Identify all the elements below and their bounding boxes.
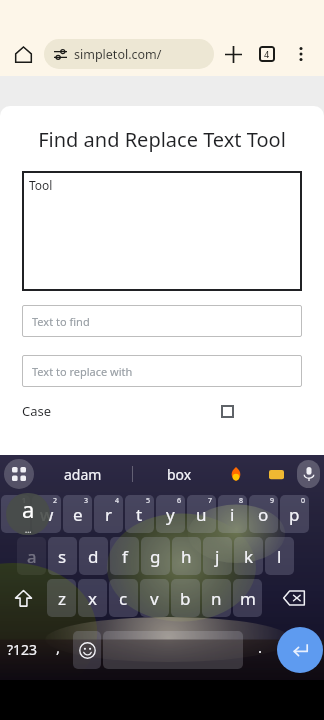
button[interactable]: New tab xyxy=(216,37,250,71)
staticText: 3 xyxy=(84,496,89,506)
button[interactable]: u xyxy=(187,495,216,533)
button[interactable]: Text to replace with xyxy=(22,355,302,387)
staticText: Find and Replace Text Tool xyxy=(22,126,302,153)
button[interactable]: simpletol.com/findandreplac xyxy=(44,39,214,69)
button[interactable]: Backspace xyxy=(264,579,323,617)
button[interactable]: Sticker xyxy=(265,463,287,485)
button[interactable]: s xyxy=(48,537,77,575)
staticText: e xyxy=(73,503,83,526)
button[interactable]: g xyxy=(141,537,170,575)
button[interactable]: h xyxy=(172,537,201,575)
staticText: . xyxy=(258,637,263,657)
staticText: v xyxy=(150,587,159,610)
staticText: j xyxy=(215,545,220,568)
staticText: Text to replace with xyxy=(32,364,133,379)
staticText: l xyxy=(277,545,282,568)
staticText: 5 xyxy=(146,496,151,506)
button[interactable]: p xyxy=(280,495,309,533)
staticText: 4 xyxy=(264,48,270,60)
button[interactable]: Voice input xyxy=(297,460,320,488)
button[interactable]: r xyxy=(94,495,123,533)
button[interactable]: f xyxy=(110,537,139,575)
staticText: ?123 xyxy=(7,640,38,659)
button[interactable]: Keyboard options xyxy=(4,459,34,489)
button[interactable]: Enter xyxy=(277,627,323,673)
staticText: , xyxy=(56,637,61,657)
staticText: n xyxy=(211,587,222,610)
button[interactable]: m xyxy=(233,579,262,617)
staticText: 9 xyxy=(270,496,275,506)
staticText: ... xyxy=(25,524,32,535)
button[interactable]: Fire emoji xyxy=(225,463,247,485)
staticText: 0 xyxy=(301,496,306,506)
button[interactable]: x xyxy=(78,579,107,617)
staticText: x xyxy=(88,587,97,610)
staticText: i xyxy=(230,503,235,526)
staticText: k xyxy=(244,545,254,568)
button[interactable]: d xyxy=(79,537,108,575)
button[interactable]: k xyxy=(234,537,263,575)
staticText: y xyxy=(166,503,175,526)
button[interactable]: Emoji xyxy=(73,631,101,669)
staticText: b xyxy=(180,587,191,610)
button[interactable]: v xyxy=(140,579,169,617)
button[interactable]: box xyxy=(133,455,225,493)
staticText: 2 xyxy=(53,496,58,506)
staticText: f xyxy=(122,545,128,568)
staticText: 7 xyxy=(208,496,213,506)
button[interactable]: y xyxy=(156,495,185,533)
button[interactable]: z xyxy=(47,579,76,617)
staticText: m xyxy=(240,587,256,610)
staticText: t xyxy=(136,503,143,526)
staticText: p xyxy=(289,503,300,526)
button[interactable]: Tabs, 4 open xyxy=(250,37,284,71)
staticText: o xyxy=(258,503,269,526)
staticText: Tool xyxy=(29,177,53,193)
button[interactable]: Space xyxy=(103,631,243,669)
button[interactable]: ?123 xyxy=(1,621,43,678)
button[interactable]: t xyxy=(125,495,154,533)
staticText: 1 xyxy=(22,496,27,506)
staticText: a xyxy=(22,494,35,524)
staticText: Case xyxy=(22,402,52,420)
button[interactable]: , xyxy=(45,621,71,678)
button[interactable]: Shift xyxy=(1,579,45,617)
button[interactable]: i xyxy=(218,495,247,533)
staticText: g xyxy=(150,545,161,568)
button[interactable]: l xyxy=(265,537,294,575)
button[interactable]: . xyxy=(245,621,275,678)
button[interactable]: adam xyxy=(34,455,132,493)
staticText: z xyxy=(58,587,66,610)
button[interactable]: Home xyxy=(6,37,40,71)
staticText: h xyxy=(181,545,192,568)
staticText: 8 xyxy=(239,496,244,506)
staticText: 4 xyxy=(115,496,120,506)
staticText: c xyxy=(119,587,128,610)
staticText: s xyxy=(58,545,67,568)
button[interactable]: Case xyxy=(22,399,302,423)
staticText: box xyxy=(167,465,192,484)
button[interactable]: Text to find xyxy=(22,305,302,337)
button[interactable]: 1 xyxy=(1,495,30,533)
staticText: w xyxy=(40,503,54,526)
staticText: r xyxy=(105,503,113,526)
button[interactable]: j xyxy=(203,537,232,575)
staticText: simpletol.com/findandreplac xyxy=(74,46,204,63)
button[interactable]: n xyxy=(202,579,231,617)
button[interactable]: e xyxy=(63,495,92,533)
staticText: Text to find xyxy=(32,314,90,329)
staticText: a xyxy=(27,545,37,568)
staticText: d xyxy=(88,545,99,568)
button[interactable]: a xyxy=(17,537,46,575)
button[interactable]: c xyxy=(109,579,138,617)
staticText: 6 xyxy=(177,496,182,506)
button[interactable]: w xyxy=(32,495,61,533)
button[interactable]: More options xyxy=(284,37,318,71)
button[interactable]: o xyxy=(249,495,278,533)
staticText: adam xyxy=(64,465,102,484)
button[interactable]: Tool xyxy=(22,171,302,291)
staticText: u xyxy=(196,503,207,526)
button[interactable]: b xyxy=(171,579,200,617)
